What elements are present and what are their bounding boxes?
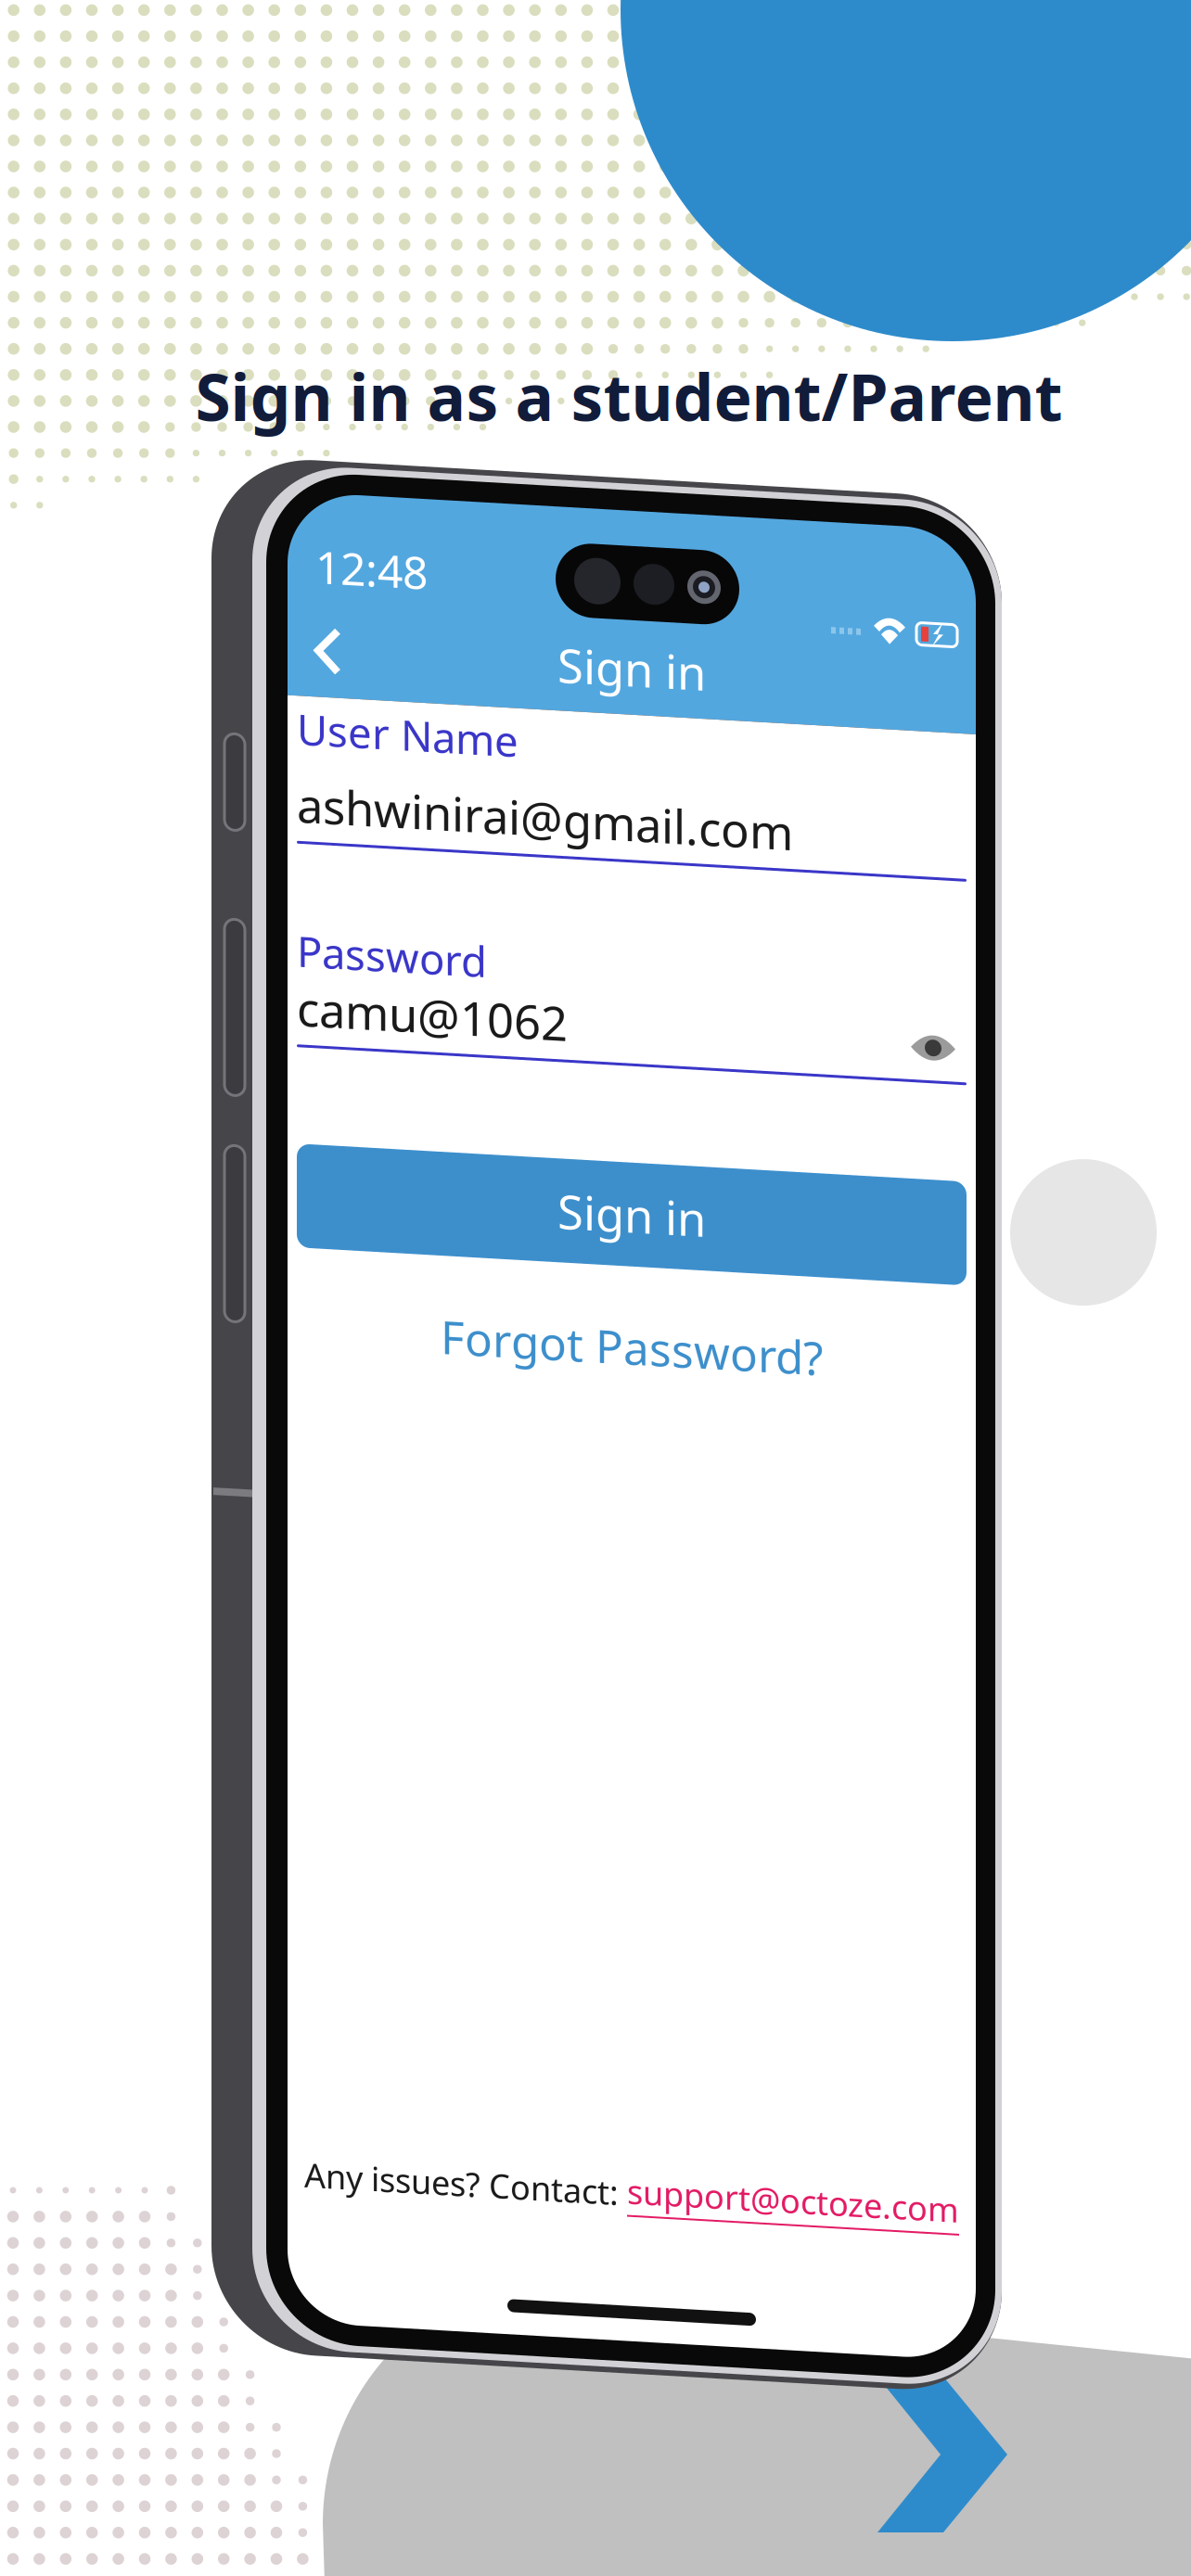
staticText: Sign in as a student/Parent <box>195 353 1063 439</box>
staticText: Sign in <box>557 613 706 676</box>
staticText: ashwinirai@gmail.com <box>297 768 793 830</box>
staticText: User Name <box>297 695 519 751</box>
staticText: camu@1062 <box>297 972 568 1034</box>
staticText: Any issues? Contact: <box>304 2147 627 2191</box>
staticText: support@octoze.com <box>627 2145 959 2189</box>
staticText: Sign in <box>557 1159 706 1222</box>
staticText: Forgot Password? <box>441 1293 823 1353</box>
staticText: 12:48 <box>315 531 428 590</box>
button[interactable]: Back <box>299 613 358 676</box>
button[interactable]: Forgot Password? <box>297 1280 967 1366</box>
staticText: Password <box>297 918 487 973</box>
button[interactable]: Sign in <box>297 1139 967 1243</box>
